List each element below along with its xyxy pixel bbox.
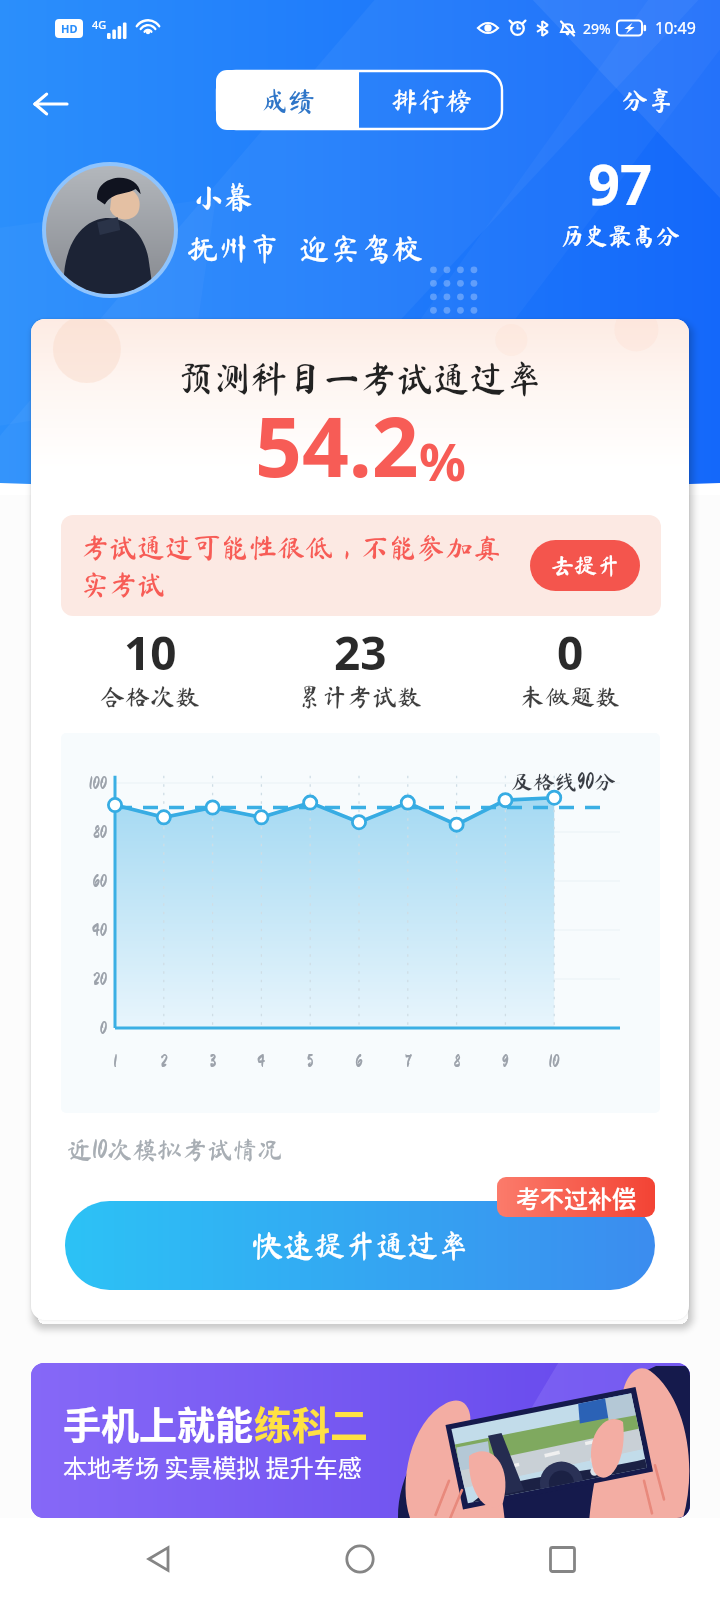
staticText: 去提升 (551, 554, 620, 577)
staticText: 5 (295, 1052, 325, 1070)
staticText: 4 (246, 1052, 276, 1070)
staticText: 10 (124, 621, 177, 684)
staticText: 预测科目一考试通过率 (31, 360, 689, 396)
staticText: 近10次模拟考试情况 (67, 1137, 283, 1162)
button[interactable]: Home (317, 1518, 403, 1600)
staticText: HD (61, 21, 78, 36)
staticText: 合格次数 (100, 684, 201, 709)
button[interactable]: 手机上就能 (31, 1363, 690, 1518)
staticText: 练科二 (254, 1395, 369, 1450)
staticText: 手机上就能 (63, 1395, 254, 1450)
staticText: 4G (92, 17, 107, 32)
staticText: 29% (583, 19, 611, 38)
staticText: 60 (63, 872, 107, 890)
staticText: 23 (334, 621, 387, 684)
button[interactable]: Recent apps (519, 1518, 605, 1600)
staticText: 8 (442, 1052, 472, 1070)
staticText: 排行榜 (391, 87, 472, 114)
staticText: 及格线90分 (511, 771, 617, 793)
button[interactable]: 快速提升通过率 (65, 1201, 655, 1290)
staticText: 9 (490, 1052, 520, 1070)
staticText: 100 (63, 774, 107, 792)
staticText: 考试通过可能性很低，不能参加真实考试 (81, 533, 511, 599)
staticText: 10 (539, 1052, 569, 1070)
staticText: 3 (198, 1052, 228, 1070)
staticText: 7 (393, 1052, 423, 1070)
staticText: 本地考场 实景模拟 提升车感 (63, 1449, 362, 1484)
staticText: 97 (588, 145, 653, 221)
button[interactable]: 考不过补偿 (497, 1177, 655, 1217)
staticText: 40 (63, 921, 107, 939)
staticText: 0 (63, 1019, 107, 1037)
staticText: 未做题数 (520, 684, 621, 709)
staticText: 累计考试数 (297, 684, 423, 709)
staticText: 抚州市 迎宾驾校 (187, 233, 423, 264)
staticText: 成绩 (261, 87, 315, 114)
staticText: 分享 (622, 87, 675, 113)
button[interactable]: 成绩 (216, 70, 359, 130)
button[interactable]: 排行榜 (359, 70, 503, 130)
button[interactable]: 去提升 (530, 540, 640, 591)
staticText: % (419, 425, 466, 496)
staticText: 1 (100, 1052, 130, 1070)
button[interactable]: Back (22, 76, 78, 132)
staticText: 历史最高分 (560, 224, 680, 248)
button[interactable]: Back (116, 1518, 202, 1600)
staticText: 小暮 (192, 181, 254, 212)
staticText: 6 (344, 1052, 374, 1070)
staticText: 10:49 (655, 17, 696, 39)
staticText: 20 (63, 970, 107, 988)
staticText: 80 (63, 823, 107, 841)
button[interactable]: Avatar (42, 162, 178, 298)
staticText: 0 (557, 621, 584, 684)
staticText: 54.2 (255, 389, 419, 501)
staticText: 快速提升通过率 (252, 1230, 469, 1261)
staticText: 考不过补偿 (516, 1180, 636, 1215)
button[interactable]: 分享 (600, 76, 696, 124)
staticText: 2 (149, 1052, 179, 1070)
